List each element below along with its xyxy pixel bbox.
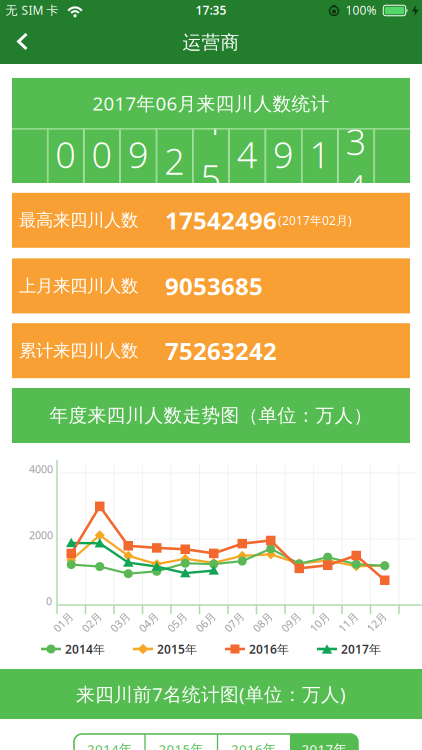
staticText: 2015年 xyxy=(157,641,197,657)
staticText: 年度来四川人数走势图（单位：万人） xyxy=(49,404,372,427)
staticText: 4 xyxy=(237,130,258,178)
staticText: 2000 xyxy=(29,528,53,542)
staticText: 2 xyxy=(164,137,185,185)
staticText: 0 xyxy=(92,130,113,178)
button[interactable]: 2016年 xyxy=(218,733,288,750)
staticText: 5 xyxy=(200,153,221,201)
staticText: 运营商 xyxy=(182,31,239,54)
staticText: 0 xyxy=(46,594,52,608)
staticText: 1 xyxy=(309,130,330,178)
staticText: 2017年06月来四川人数统计 xyxy=(92,91,329,116)
staticText: 2014年 xyxy=(65,641,105,657)
button[interactable]: 2017年 xyxy=(290,733,358,750)
staticText: 2015年 xyxy=(158,740,203,750)
staticText: 9 xyxy=(128,130,149,178)
staticText: 2016年 xyxy=(231,740,276,750)
staticText: 最高来四川人数 xyxy=(19,210,138,231)
staticText: 17:35 xyxy=(195,2,226,18)
staticText: 100% xyxy=(345,2,376,18)
staticText: 4 xyxy=(346,163,367,211)
staticText: 上月来四川人数 xyxy=(19,275,138,297)
staticText: (2017年02月) xyxy=(278,212,352,228)
staticText: 来四川前7名统计图(单位：万人) xyxy=(76,682,346,706)
staticText: 3 xyxy=(346,117,367,165)
staticText: 06月 xyxy=(194,615,217,629)
staticText: 2017年 xyxy=(341,641,381,657)
staticText: 75263242 xyxy=(165,335,277,367)
staticText: 无 SIM 卡 xyxy=(5,2,58,18)
button[interactable]: 2015年 xyxy=(146,733,216,750)
staticText: 09月 xyxy=(280,615,303,629)
staticText: 08月 xyxy=(251,615,274,629)
staticText: 累计来四川人数 xyxy=(19,340,138,361)
staticText: 2016年 xyxy=(249,641,289,657)
staticText: 04月 xyxy=(137,615,160,629)
staticText: 03月 xyxy=(109,615,132,629)
staticText: 07月 xyxy=(223,615,246,629)
staticText: 05月 xyxy=(166,615,189,629)
staticText: 4 xyxy=(200,97,221,145)
staticText: 12月 xyxy=(365,615,388,629)
staticText: 9 xyxy=(273,130,294,178)
staticText: 10月 xyxy=(308,615,331,629)
staticText: 2017年 xyxy=(301,740,346,750)
staticText: 0 xyxy=(55,130,76,178)
staticText: 9053685 xyxy=(165,270,263,302)
staticText: 02月 xyxy=(80,615,103,629)
staticText: 11月 xyxy=(337,615,360,629)
staticText: 01月 xyxy=(52,615,75,629)
staticText: 4000 xyxy=(29,462,53,476)
button[interactable]: Back xyxy=(16,32,28,50)
staticText: 2014年 xyxy=(87,740,132,750)
button[interactable]: 2014年 xyxy=(74,733,144,750)
staticText: 17542496 xyxy=(165,204,277,236)
